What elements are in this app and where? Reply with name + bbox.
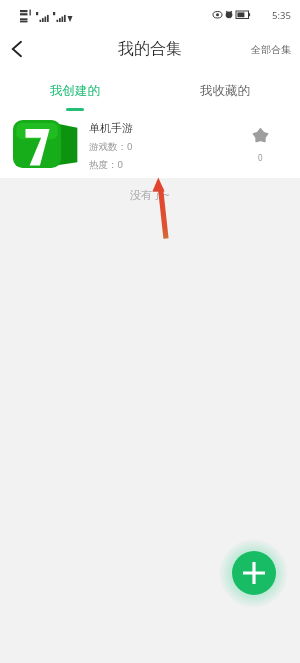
staticText: 全部合集 [251,43,291,56]
button[interactable]: 全部合集 [251,28,291,70]
staticText: 我的合集 [118,39,182,59]
button[interactable]: Add collection [232,551,276,595]
staticText: 5:35 [272,9,291,22]
staticText: 单机手游 [89,121,133,135]
button[interactable]: 我收藏的 [150,70,300,112]
staticText: 0 [258,152,263,163]
staticText: 热度：0 [89,158,123,171]
button[interactable]: Back [0,28,36,70]
staticText: 我创建的 [50,83,100,99]
staticText: 游戏数：0 [89,140,133,153]
button[interactable]: 我创建的 [0,70,150,112]
button[interactable]: 单机手游 [0,112,300,178]
staticText: 没有了~ [130,187,170,202]
staticText: 我收藏的 [200,83,250,99]
